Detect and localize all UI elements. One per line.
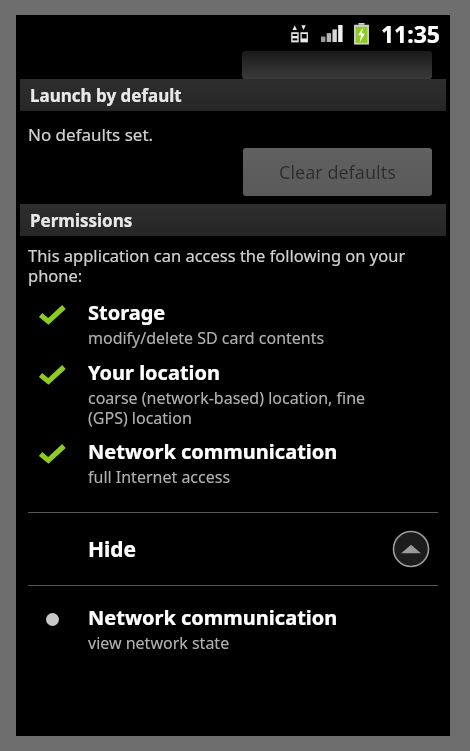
staticText: Clear defaults <box>279 160 396 185</box>
staticText: This application can access the followin… <box>28 244 440 287</box>
staticText: Launch by default <box>30 84 182 107</box>
staticText: Network communication <box>88 438 338 465</box>
button[interactable]: Granted <box>16 299 450 349</box>
staticText: Your location <box>88 359 221 386</box>
staticText: full Internet access <box>88 466 231 488</box>
other: Granted <box>39 444 65 464</box>
button[interactable]: Network communication <box>16 604 450 654</box>
button[interactable]: Clear defaults <box>243 148 432 196</box>
staticText: No defaults set. <box>28 123 154 146</box>
staticText: Permissions <box>30 209 133 232</box>
staticText: modify/delete SD card contents <box>88 327 325 349</box>
other: Granted <box>39 305 65 325</box>
staticText: 11:35 <box>380 18 440 49</box>
button[interactable]: Granted <box>16 438 450 488</box>
button[interactable]: Hide <box>16 513 450 585</box>
other: Granted <box>39 365 65 385</box>
button[interactable]: Granted <box>16 359 450 428</box>
staticText: view network state <box>88 632 230 654</box>
staticText: coarse (network-based) location, fine (G… <box>88 387 366 428</box>
button[interactable]: Collapse <box>392 530 430 568</box>
staticText: Hide <box>88 535 137 564</box>
button[interactable] <box>242 51 432 79</box>
staticText: Network communication <box>88 604 338 631</box>
staticText: Storage <box>88 299 166 326</box>
